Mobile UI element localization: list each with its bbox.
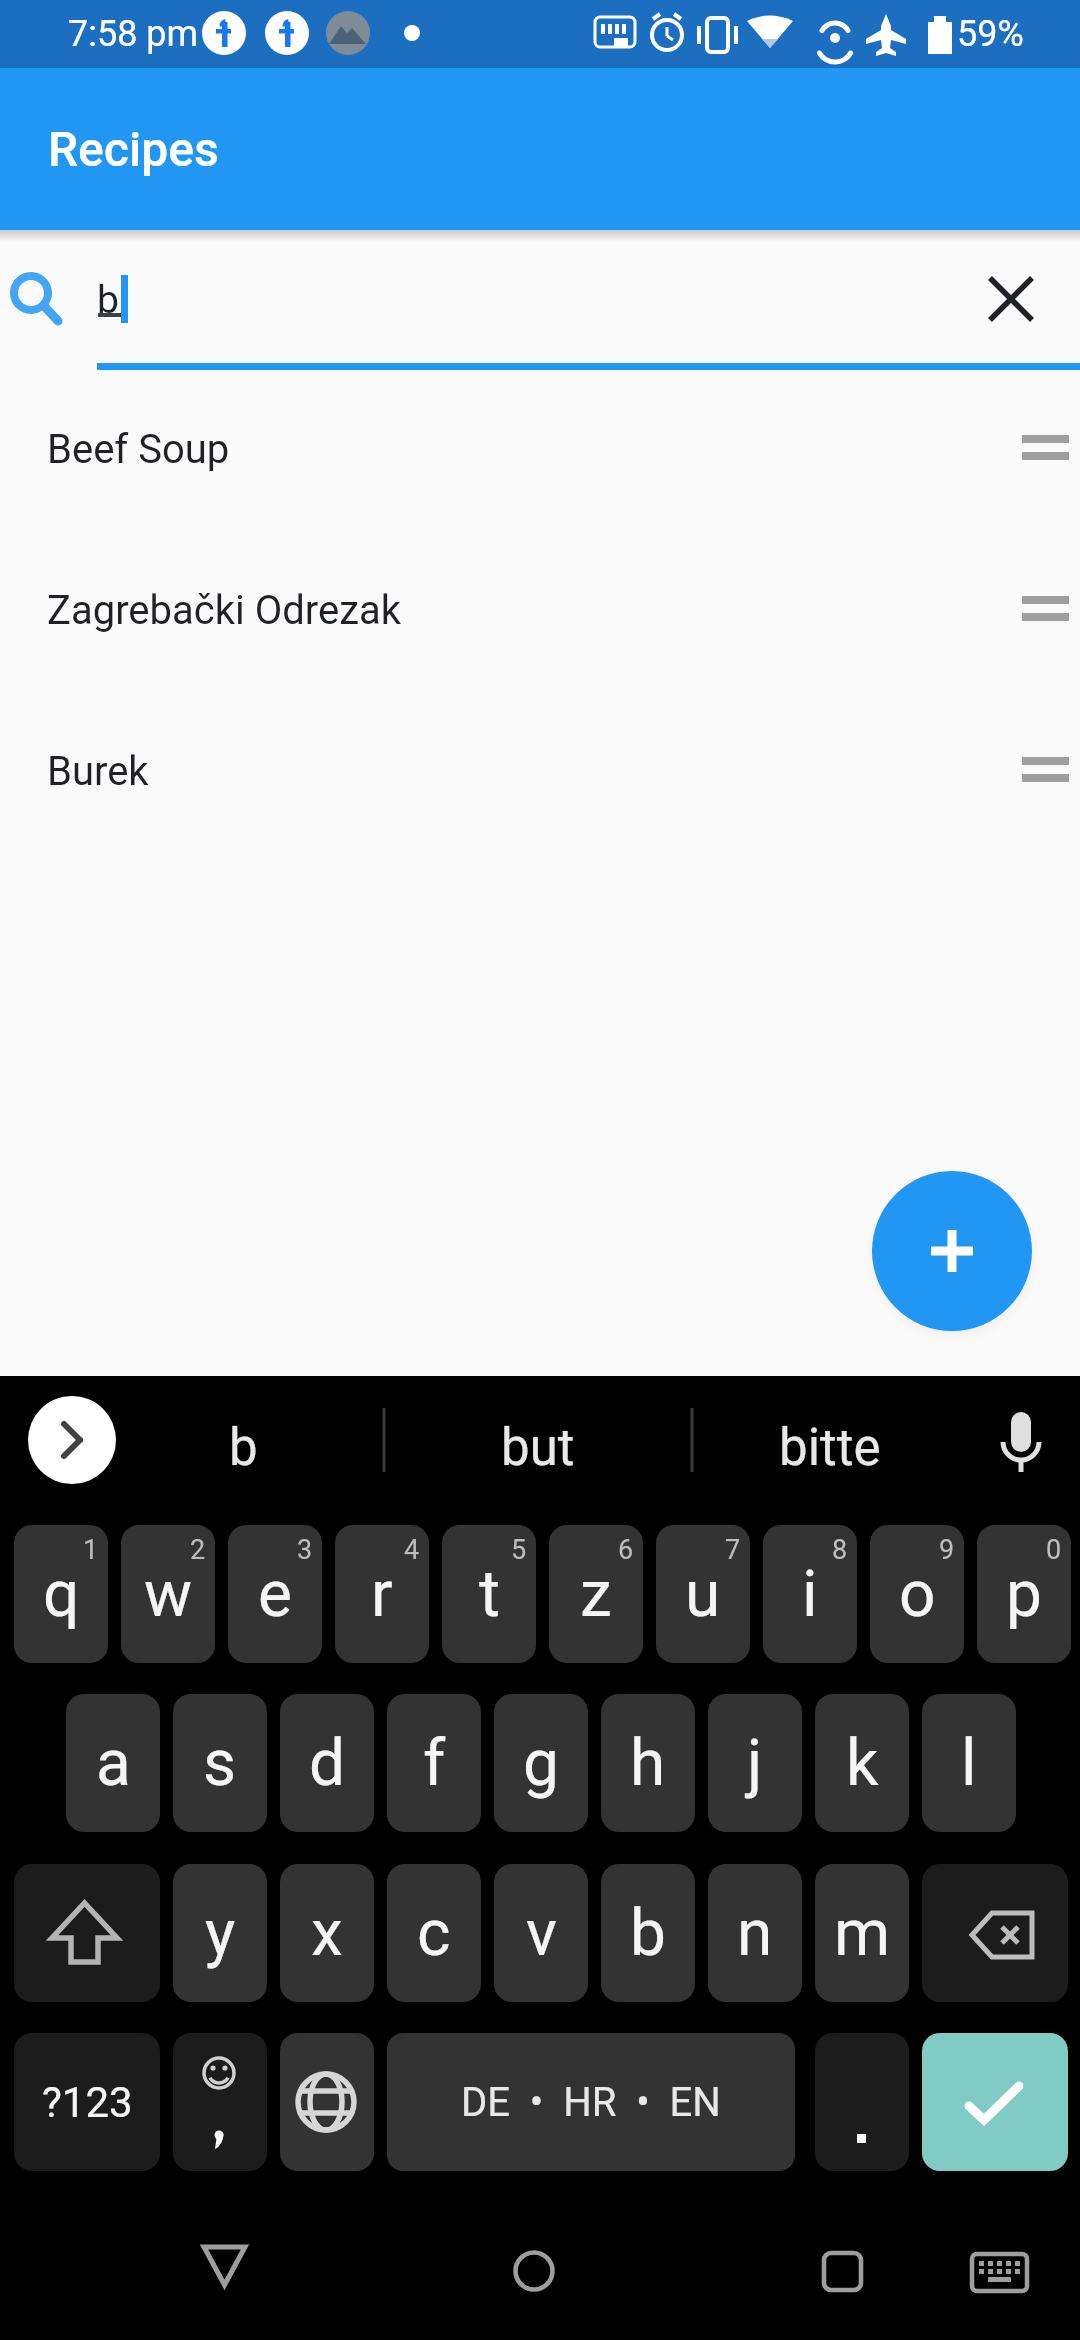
staticText: Burek <box>47 748 149 795</box>
staticText: 8 <box>832 1534 848 1566</box>
staticText: DE • HR • EN <box>461 2079 721 2126</box>
staticText: g <box>523 1726 559 1801</box>
button[interactable] <box>173 2033 267 2171</box>
button[interactable] <box>872 1171 1032 1331</box>
staticText: bitte <box>779 1418 881 1478</box>
staticText: 7:58 pm <box>68 13 199 55</box>
staticText: b <box>229 1418 258 1478</box>
staticText: k <box>846 1726 879 1801</box>
staticText: s <box>203 1726 237 1801</box>
button[interactable]: DE • HR • EN <box>387 2033 795 2171</box>
button[interactable] <box>14 1864 160 2002</box>
button[interactable]: p <box>977 1525 1071 1663</box>
staticText: b <box>630 1896 666 1971</box>
staticText: Beef Soup <box>47 426 230 473</box>
button[interactable]: t <box>442 1525 536 1663</box>
staticText: Recipes <box>48 121 219 177</box>
staticText: 6 <box>618 1534 634 1566</box>
button[interactable]: w <box>121 1525 215 1663</box>
button[interactable] <box>950 2220 1070 2310</box>
button[interactable]: b <box>601 1864 695 2002</box>
button[interactable] <box>160 2220 280 2310</box>
staticText: n <box>737 1896 773 1971</box>
button[interactable]: z <box>549 1525 643 1663</box>
button[interactable] <box>473 2220 593 2310</box>
staticText: m <box>834 1896 891 1971</box>
button[interactable] <box>783 2220 903 2310</box>
staticText: 0 <box>1046 1534 1062 1566</box>
staticText: a <box>96 1726 131 1801</box>
button[interactable]: d <box>280 1694 374 1832</box>
button[interactable]: Beef Soup <box>0 384 1080 514</box>
staticText: 5 <box>511 1534 527 1566</box>
button[interactable]: Recipes <box>0 68 1080 230</box>
staticText: 3 <box>297 1534 313 1566</box>
button[interactable]: u <box>656 1525 750 1663</box>
staticText: ?123 <box>42 2078 133 2127</box>
staticText: Zagrebački Odrezak <box>47 587 402 634</box>
staticText: v <box>526 1896 557 1971</box>
button[interactable]: m <box>815 1864 909 2002</box>
button[interactable]: l <box>922 1694 1016 1832</box>
button[interactable]: Zagrebački Odrezak <box>0 545 1080 675</box>
button[interactable]: v <box>494 1864 588 2002</box>
staticText: w <box>144 1557 193 1632</box>
button[interactable]: ?123 <box>14 2033 160 2171</box>
staticText: p <box>1006 1557 1042 1632</box>
staticText: 7 <box>725 1534 741 1566</box>
staticText: u <box>685 1557 721 1632</box>
button[interactable]: h <box>601 1694 695 1832</box>
staticText: 59% <box>957 13 1024 55</box>
staticText: t <box>479 1557 500 1632</box>
staticText: z <box>580 1557 612 1632</box>
staticText: e <box>258 1557 292 1632</box>
button[interactable]: y <box>173 1864 267 2002</box>
staticText: 2 <box>190 1534 206 1566</box>
staticText: c <box>417 1896 451 1971</box>
button[interactable] <box>280 2033 374 2171</box>
staticText: x <box>311 1896 343 1971</box>
button[interactable]: o <box>870 1525 964 1663</box>
button[interactable]: r <box>335 1525 429 1663</box>
button[interactable]: n <box>708 1864 802 2002</box>
staticText: i <box>802 1557 818 1632</box>
button[interactable]: i <box>763 1525 857 1663</box>
staticText: l <box>961 1726 977 1801</box>
button[interactable] <box>922 1864 1068 2002</box>
staticText: 1 <box>83 1534 99 1566</box>
button[interactable]: a <box>66 1694 160 1832</box>
button[interactable]: c <box>387 1864 481 2002</box>
staticText: b <box>97 277 119 323</box>
button[interactable]: g <box>494 1694 588 1832</box>
staticText: y <box>205 1896 236 1971</box>
staticText: 4 <box>404 1534 420 1566</box>
staticText: f <box>423 1726 446 1801</box>
button[interactable]: f <box>387 1694 481 1832</box>
button[interactable] <box>0 230 1080 375</box>
button[interactable] <box>815 2033 909 2171</box>
button[interactable]: k <box>815 1694 909 1832</box>
button[interactable]: s <box>173 1694 267 1832</box>
button[interactable] <box>922 2033 1068 2171</box>
staticText: q <box>43 1557 80 1632</box>
staticText: but <box>501 1418 575 1478</box>
staticText: r <box>371 1557 393 1632</box>
staticText: 9 <box>939 1534 955 1566</box>
button[interactable]: x <box>280 1864 374 2002</box>
button[interactable]: but <box>398 1376 678 1520</box>
button[interactable]: bitte <box>690 1376 970 1520</box>
button[interactable]: e <box>228 1525 322 1663</box>
button[interactable]: q <box>14 1525 108 1663</box>
staticText: d <box>309 1726 346 1801</box>
staticText: j <box>747 1726 763 1801</box>
staticText: o <box>899 1557 936 1632</box>
button[interactable]: j <box>708 1694 802 1832</box>
staticText: h <box>630 1726 666 1801</box>
button[interactable]: b <box>136 1376 350 1520</box>
button[interactable] <box>28 1396 116 1484</box>
button[interactable]: Burek <box>0 706 1080 836</box>
